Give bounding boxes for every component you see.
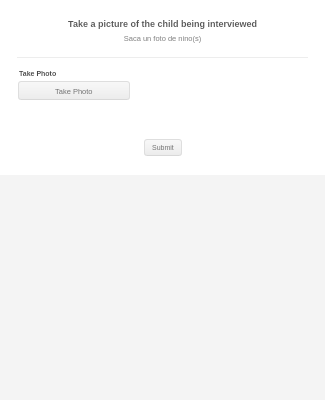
button[interactable]: Take Photo [18, 81, 130, 100]
staticText: Take Photo [55, 87, 93, 95]
button[interactable]: Submit [144, 139, 182, 156]
staticText: Take Photo [19, 70, 57, 78]
staticText: Submit [152, 144, 174, 152]
staticText: Take a picture of the child being interv… [0, 19, 325, 29]
staticText: Saca un foto de nino(s) [0, 34, 325, 42]
